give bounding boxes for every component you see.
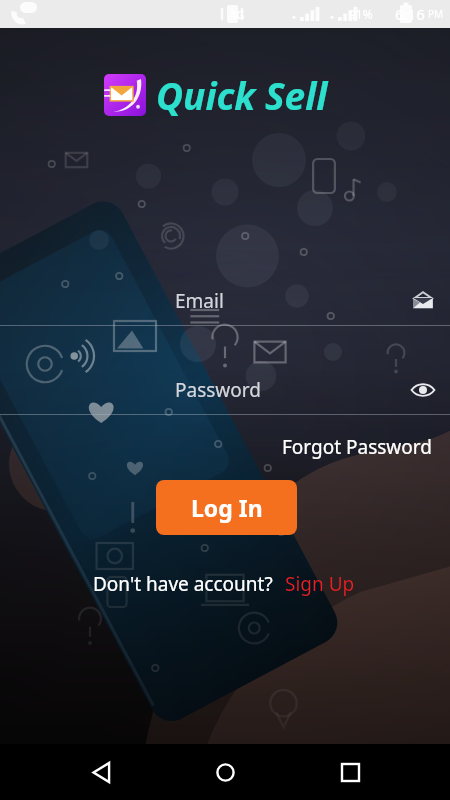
staticText: Forgot Password [282, 434, 432, 460]
button[interactable]: Recent apps [326, 748, 374, 796]
staticText: Email [175, 288, 224, 314]
staticText: Don't have account? [93, 571, 273, 597]
staticText: Sign Up [285, 571, 355, 597]
button[interactable]: Sign Up [282, 568, 358, 600]
staticText: Quick Sell [156, 70, 328, 120]
button[interactable]: Back [77, 748, 125, 796]
staticText: Password [175, 377, 261, 403]
button[interactable]: Forgot Password [264, 427, 450, 467]
button[interactable]: Home [201, 748, 249, 796]
staticText: 4G [230, 7, 245, 22]
staticText: Log In [191, 492, 263, 523]
staticText: 91% [349, 6, 373, 22]
button[interactable]: Log In [156, 480, 297, 535]
button[interactable]: Password [0, 370, 450, 415]
staticText: PM [428, 7, 444, 21]
other: Email [410, 288, 436, 314]
staticText: 6:16 [395, 4, 425, 24]
other: Show password [410, 377, 436, 403]
button[interactable]: Email [0, 281, 450, 326]
